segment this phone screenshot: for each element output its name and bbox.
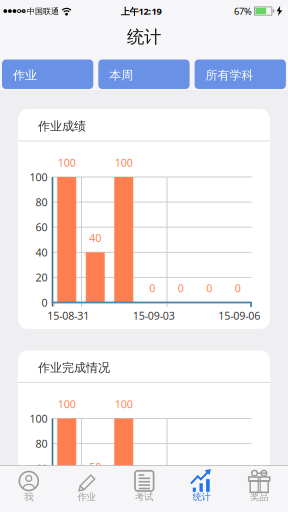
staticText: 67% [234,5,252,17]
staticText: 60 [35,462,47,476]
staticText: 100 [115,397,133,411]
staticText: 80 [35,436,47,451]
button[interactable]: 作业 [58,466,115,512]
staticText: 作业 [13,68,37,83]
staticText: 奖品 [250,491,268,503]
staticText: 40 [89,231,101,245]
button[interactable]: 作业 [2,59,93,89]
staticText: 15-09-03 [133,308,175,323]
staticText: 80 [35,195,47,209]
staticText: 统计 [193,491,211,503]
button[interactable]: 本周 [98,59,190,89]
staticText: 40 [35,487,47,501]
staticText: 15-08-31 [47,308,89,323]
staticText: 作业 [77,491,95,503]
staticText: 本周 [109,68,133,83]
button[interactable]: 我 [0,466,58,512]
staticText: 100 [30,411,48,426]
staticText: 15-09-06 [218,308,260,323]
staticText: 20 [35,270,47,284]
staticText: 上午12:19 [120,5,161,17]
staticText: 统计 [127,26,161,48]
staticText: 0 [41,295,47,310]
staticText: 作业完成情况 [38,360,110,375]
button[interactable]: 考试 [115,466,173,512]
button[interactable]: 所有学科 [195,59,286,89]
button[interactable]: 统计 [173,466,230,512]
staticText: 40 [35,245,47,259]
staticText: 50 [89,460,101,474]
staticText: 中国联通 [27,6,59,16]
staticText: 100 [58,155,76,170]
staticText: 100 [30,170,48,184]
button[interactable]: 奖品 [230,466,288,512]
staticText: 0 [149,281,155,295]
staticText: 0 [206,281,212,295]
staticText: 100 [58,397,76,411]
staticText: 考试 [135,491,153,503]
staticText: 0 [235,281,241,295]
staticText: 60 [35,220,47,234]
staticText: 0 [178,281,184,295]
staticText: 我 [24,491,33,503]
staticText: 100 [115,155,133,170]
staticText: 作业成绩 [38,119,86,134]
staticText: 所有学科 [206,68,254,83]
